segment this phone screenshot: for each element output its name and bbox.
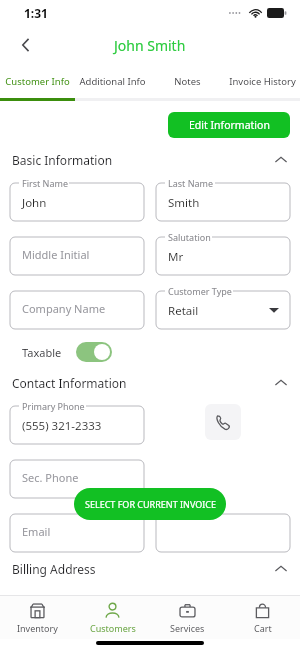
staticText: Middle Initial bbox=[22, 247, 90, 262]
staticText: Contact Information bbox=[12, 375, 274, 391]
button[interactable]: Inventory bbox=[0, 596, 75, 639]
staticText: Taxable bbox=[22, 345, 62, 360]
staticText: Edit Information bbox=[189, 118, 270, 132]
staticText: SELECT FOR CURRENT INVOICE bbox=[85, 498, 216, 510]
staticText: Invoice History bbox=[229, 75, 296, 88]
staticText: Additional Info bbox=[79, 75, 146, 88]
staticText: Email bbox=[22, 524, 51, 539]
staticText: First Name bbox=[22, 177, 68, 189]
button[interactable]: Email bbox=[10, 508, 144, 552]
button[interactable]: Primary Phone bbox=[10, 400, 144, 444]
staticText: Customers bbox=[90, 622, 136, 634]
staticText: Cart bbox=[254, 622, 272, 634]
staticText: Salutation bbox=[168, 231, 211, 243]
staticText: Customer Type bbox=[168, 285, 232, 297]
staticText: Inventory bbox=[17, 622, 58, 634]
staticText: Retail bbox=[168, 303, 199, 319]
button[interactable]: Notes bbox=[150, 64, 225, 98]
staticText: Billing Address bbox=[12, 561, 274, 577]
button[interactable]: Call bbox=[205, 404, 241, 440]
button[interactable]: SELECT FOR CURRENT INVOICE bbox=[74, 488, 226, 520]
staticText: Primary Phone bbox=[22, 400, 85, 412]
staticText: John bbox=[22, 195, 47, 211]
staticText: Company Name bbox=[22, 301, 106, 316]
button[interactable]: First Name bbox=[10, 177, 144, 221]
button[interactable]: Cart bbox=[225, 596, 300, 639]
button[interactable]: Middle Initial bbox=[10, 231, 144, 275]
staticText: Smith bbox=[168, 195, 200, 211]
button[interactable]: Back bbox=[8, 27, 44, 63]
button[interactable]: Customers bbox=[75, 596, 150, 639]
staticText: Notes bbox=[174, 75, 201, 88]
button[interactable]: Customer Type bbox=[156, 285, 290, 329]
staticText: Sec. Phone bbox=[22, 470, 79, 485]
staticText: Services bbox=[170, 622, 205, 634]
button[interactable]: Invoice History bbox=[225, 64, 300, 98]
button[interactable]: Sec. Phone bbox=[10, 454, 144, 498]
button[interactable]: Customer Info bbox=[0, 64, 75, 98]
staticText: John Smith bbox=[114, 36, 186, 55]
staticText: Basic Information bbox=[12, 152, 274, 168]
button[interactable]: Taxable bbox=[22, 342, 290, 362]
staticText: Last Name bbox=[168, 177, 214, 189]
button[interactable] bbox=[156, 508, 290, 552]
button[interactable]: Billing Address bbox=[12, 561, 288, 577]
button[interactable]: Additional Info bbox=[75, 64, 150, 98]
button[interactable]: Salutation bbox=[156, 231, 290, 275]
button[interactable]: Edit Information bbox=[168, 112, 290, 138]
staticText: (555) 321-2333 bbox=[22, 418, 102, 434]
button[interactable]: Last Name bbox=[156, 177, 290, 221]
button[interactable]: Basic Information bbox=[12, 152, 288, 168]
button[interactable]: Company Name bbox=[10, 285, 144, 329]
staticText: Mr bbox=[168, 249, 184, 265]
staticText: Customer Info bbox=[5, 75, 70, 88]
button[interactable]: Contact Information bbox=[12, 375, 288, 391]
button[interactable]: Services bbox=[150, 596, 225, 639]
staticText: 1:31 bbox=[24, 5, 48, 21]
